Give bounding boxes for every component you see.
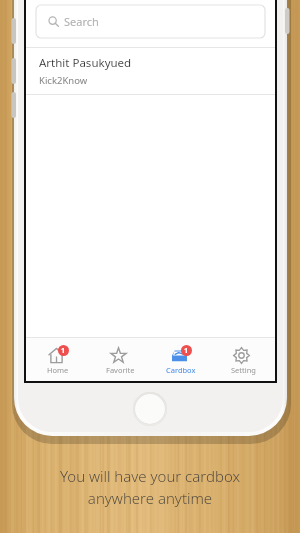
button[interactable]: Arthit Pasukyued: [26, 48, 275, 94]
staticText: You will have your cardbox anywhere anyt…: [0, 466, 300, 509]
staticText: 1: [61, 346, 66, 356]
staticText: Kick2Know: [39, 74, 88, 87]
staticText: Favorite: [106, 365, 135, 375]
button[interactable]: Favorite: [91, 338, 149, 381]
staticText: 1: [184, 346, 189, 356]
staticText: Home: [47, 365, 69, 375]
button[interactable]: Cardbox: [152, 338, 210, 381]
button[interactable]: Search: [36, 5, 265, 38]
staticText: Setting: [231, 365, 256, 375]
staticText: Arthit Pasukyued: [39, 55, 132, 71]
button[interactable]: Setting: [214, 338, 272, 381]
staticText: Search: [64, 14, 99, 29]
button[interactable]: Home: [29, 338, 87, 381]
staticText: Cardbox: [166, 365, 196, 375]
